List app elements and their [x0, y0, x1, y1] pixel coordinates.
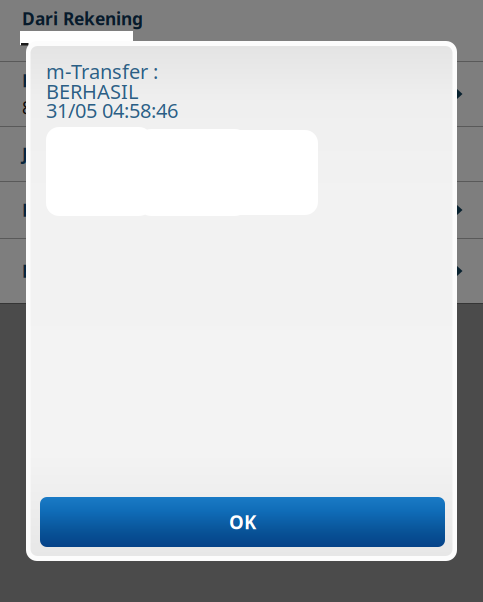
button[interactable]: Berita	[0, 239, 483, 303]
button[interactable]: Ke Rekening	[0, 182, 483, 238]
staticText: 31/05 04:58:46	[46, 97, 178, 124]
button[interactable]: KOTAK	[0, 62, 483, 126]
staticText: Dari Rekening	[22, 7, 143, 30]
staticText: Ke Rekening	[22, 198, 129, 221]
staticText: OK	[229, 510, 256, 534]
staticText: Berita	[22, 259, 75, 282]
staticText: Jenis Transfer	[22, 142, 139, 165]
button[interactable]: Jenis Transfer	[0, 127, 483, 181]
button[interactable]: OK	[40, 497, 445, 547]
staticText: KOTAK	[22, 69, 79, 92]
staticText: 8xxxxxxxxx	[22, 96, 113, 119]
staticText: BERHASIL	[46, 78, 138, 105]
staticText: m-Transfer :	[46, 58, 158, 85]
